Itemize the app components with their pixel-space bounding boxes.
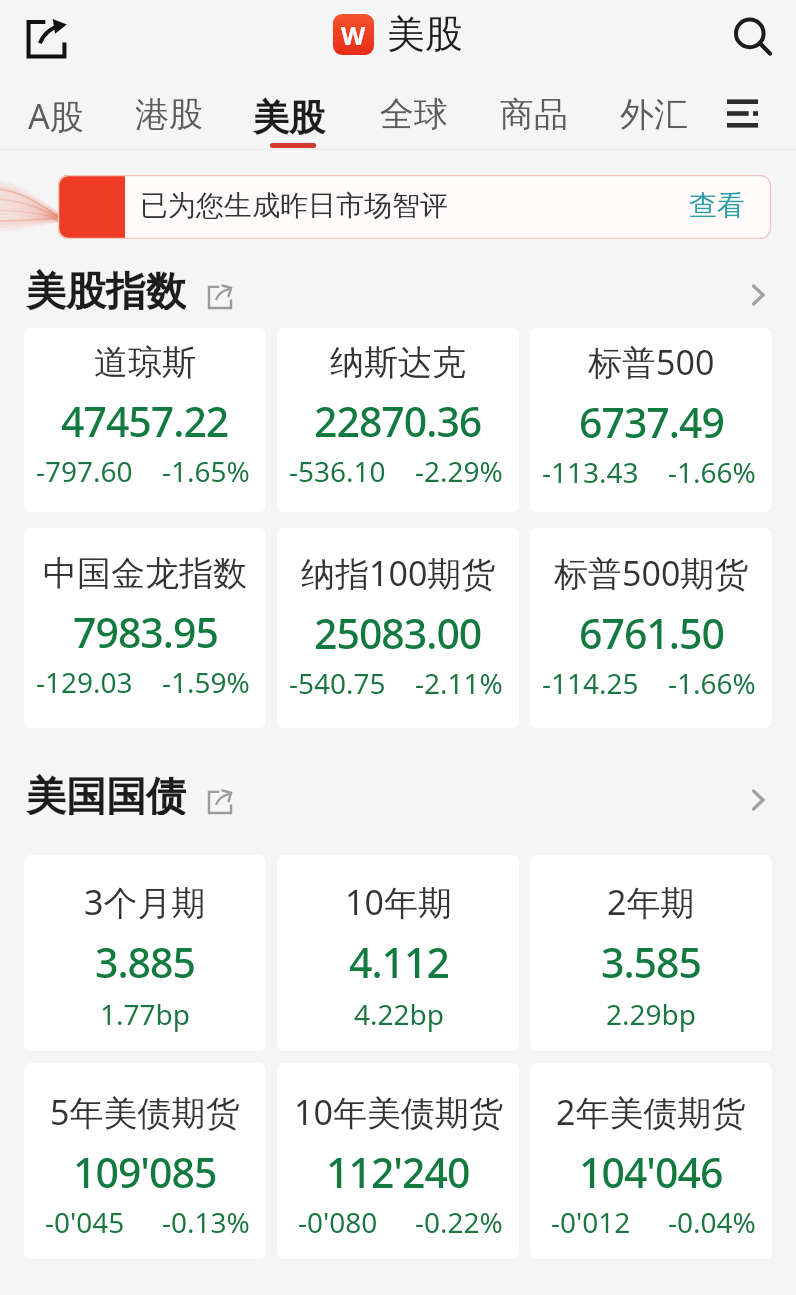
staticText: -0.22% xyxy=(415,1203,503,1241)
staticText: -536.10 xyxy=(289,452,386,490)
button[interactable]: 美股 xyxy=(233,76,345,150)
staticText: 美股 xyxy=(387,10,463,58)
staticText: 标普500 xyxy=(588,339,715,385)
staticText: 外汇 xyxy=(620,93,688,136)
button[interactable]: 已为您生成昨日市场智评 xyxy=(58,175,771,239)
staticText: 2年期 xyxy=(607,879,695,925)
staticText: -1.66% xyxy=(668,664,756,702)
button[interactable]: 10年期 xyxy=(277,855,519,1051)
staticText: -797.60 xyxy=(36,452,133,490)
staticText: 2.29bp xyxy=(606,995,696,1033)
staticText: 4.112 xyxy=(349,934,449,990)
staticText: 10年期 xyxy=(345,879,452,925)
staticText: 10年美债期货 xyxy=(294,1089,503,1135)
staticText: 47457.22 xyxy=(61,393,229,449)
staticText: 6761.50 xyxy=(579,605,724,661)
staticText: 3.885 xyxy=(95,934,195,990)
staticText: -2.11% xyxy=(415,664,503,702)
staticText: -0'045 xyxy=(45,1203,125,1241)
staticText: -1.65% xyxy=(162,452,250,490)
staticText: 商品 xyxy=(500,93,568,136)
staticText: -0.04% xyxy=(668,1203,756,1241)
staticText: 美股 xyxy=(253,95,325,140)
button[interactable]: 美股指数 xyxy=(26,266,772,310)
staticText: 7983.95 xyxy=(73,604,218,660)
staticText: 美国国债 xyxy=(26,771,186,815)
staticText: 纳斯达克 xyxy=(330,341,466,384)
staticText: -0'080 xyxy=(298,1203,378,1241)
staticText: 标普500期货 xyxy=(554,550,749,596)
button[interactable]: 中国金龙指数 xyxy=(24,528,266,728)
staticText: 道琼斯 xyxy=(94,341,196,384)
staticText: 5年美债期货 xyxy=(50,1089,240,1135)
button[interactable]: 纳斯达克 xyxy=(277,328,519,512)
button[interactable]: 标普500期货 xyxy=(530,528,772,728)
staticText: 25083.00 xyxy=(314,605,482,661)
button[interactable]: 道琼斯 xyxy=(24,328,266,512)
staticText: 2年美债期货 xyxy=(556,1089,746,1135)
staticText: 已为您生成昨日市场智评 xyxy=(140,188,448,223)
button[interactable]: 2年期 xyxy=(530,855,772,1051)
staticText: -0.13% xyxy=(162,1203,250,1241)
button[interactable]: 全球 xyxy=(358,76,470,150)
staticText: 中国金龙指数 xyxy=(43,552,247,595)
staticText: -1.59% xyxy=(162,663,250,701)
staticText: -0'012 xyxy=(551,1203,631,1241)
staticText: 109'085 xyxy=(73,1144,217,1200)
staticText: 22870.36 xyxy=(314,393,482,449)
button[interactable]: A股 xyxy=(0,76,112,150)
staticText: -1.66% xyxy=(668,453,756,491)
button[interactable]: 3个月期 xyxy=(24,855,266,1051)
button[interactable]: 10年美债期货 xyxy=(277,1063,519,1259)
button[interactable]: All categories xyxy=(708,76,776,150)
button[interactable]: 港股 xyxy=(113,76,225,150)
staticText: -114.25 xyxy=(542,664,639,702)
staticText: 纳指100期货 xyxy=(301,550,496,596)
button[interactable]: Share xyxy=(17,9,75,67)
button[interactable]: 商品 xyxy=(478,76,590,150)
staticText: -129.03 xyxy=(36,663,133,701)
staticText: 1.77bp xyxy=(100,995,190,1033)
button[interactable]: 美国国债 xyxy=(26,771,772,815)
staticText: -540.75 xyxy=(289,664,386,702)
staticText: 全球 xyxy=(380,93,448,136)
staticText: W xyxy=(341,18,366,52)
staticText: 港股 xyxy=(135,93,203,136)
staticText: A股 xyxy=(28,93,84,139)
button[interactable]: 2年美债期货 xyxy=(530,1063,772,1259)
staticText: -2.29% xyxy=(415,452,503,490)
button[interactable]: 标普500 xyxy=(530,328,772,512)
button[interactable]: Search xyxy=(724,9,782,67)
staticText: 3个月期 xyxy=(84,879,206,925)
button[interactable]: 外汇 xyxy=(598,76,710,150)
staticText: 查看 xyxy=(689,188,745,223)
staticText: 112'240 xyxy=(326,1144,470,1200)
button[interactable]: 5年美债期货 xyxy=(24,1063,266,1259)
staticText: 美股指数 xyxy=(26,266,186,310)
staticText: 4.22bp xyxy=(354,995,444,1033)
button[interactable]: 纳指100期货 xyxy=(277,528,519,728)
staticText: -113.43 xyxy=(542,453,639,491)
staticText: 6737.49 xyxy=(579,394,724,450)
staticText: 3.585 xyxy=(601,934,701,990)
staticText: 104'046 xyxy=(579,1144,723,1200)
